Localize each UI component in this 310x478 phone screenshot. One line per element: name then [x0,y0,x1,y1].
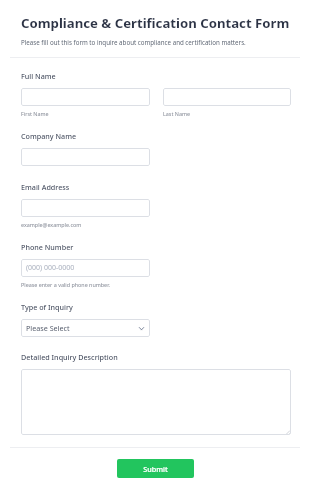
button[interactable] [21,148,150,166]
staticText: Please Select [26,323,70,333]
button[interactable] [21,369,291,435]
staticText: Email Address [21,182,70,192]
staticText: Submit [143,464,168,474]
button[interactable] [21,199,150,217]
staticText: Type of Inquiry [21,302,73,312]
button[interactable]: (000) 000-0000 [21,259,150,277]
button[interactable] [21,88,150,106]
button[interactable]: Please Select [21,319,150,337]
staticText: Phone Number [21,242,74,252]
staticText: Last Name [163,110,190,117]
staticText: Full Name [21,71,56,81]
staticText: Please enter a valid phone number. [21,281,110,288]
staticText: example@example.com [21,221,82,228]
button[interactable]: Submit [117,459,194,478]
staticText: Detailed Inquiry Description [21,352,118,362]
staticText: (000) 000-0000 [26,263,75,273]
staticText: Please fill out this form to inquire abo… [21,38,246,46]
button[interactable] [163,88,291,106]
staticText: Compliance & Certification Contact Form [21,14,290,32]
staticText: Company Name [21,131,77,141]
staticText: First Name [21,110,49,117]
